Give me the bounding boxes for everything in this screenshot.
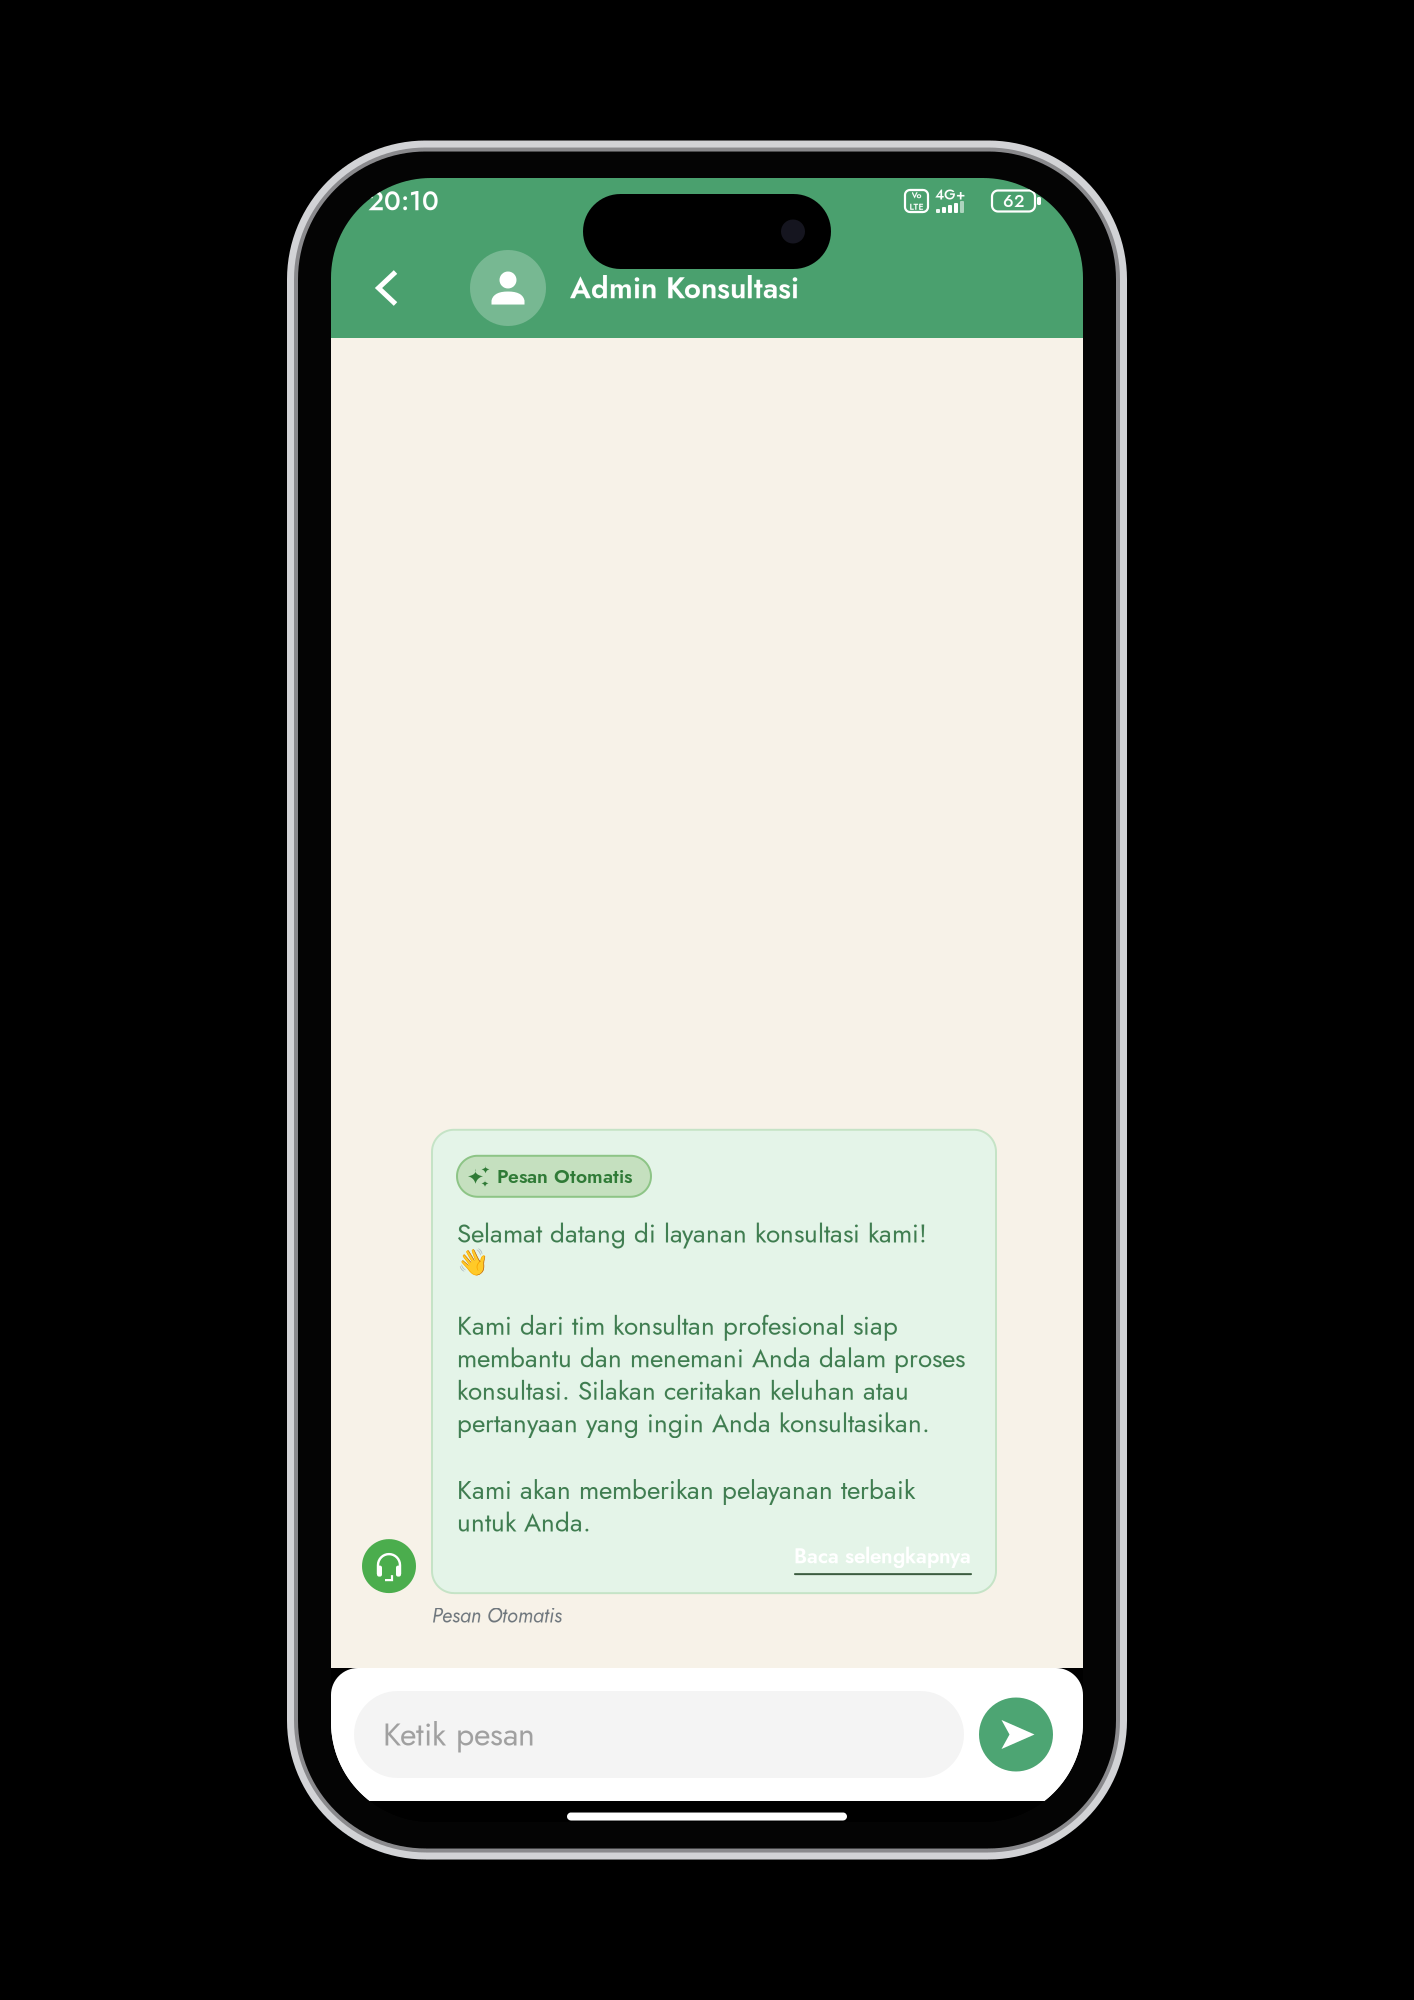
staticText: 20:10 xyxy=(368,182,439,220)
button[interactable]: Back xyxy=(354,250,420,326)
staticText: LTE xyxy=(909,200,923,213)
staticText: Kami akan memberikan pelayanan terbaik u… xyxy=(457,1471,915,1541)
staticText: Pesan Otomatis xyxy=(497,1162,632,1190)
staticText: 62 xyxy=(1003,188,1024,213)
button[interactable]: Baca selengkapnya xyxy=(794,1541,972,1575)
staticText: Ketik pesan xyxy=(383,1711,535,1758)
staticText: Pesan Otomatis xyxy=(432,1601,562,1630)
button[interactable]: Send xyxy=(979,1697,1053,1771)
staticText: Selamat datang di layanan konsultasi kam… xyxy=(457,1215,927,1278)
staticText: Baca selengkapnya xyxy=(794,1541,971,1571)
staticText: Admin Konsultasi xyxy=(570,267,799,309)
staticText: Kami dari tim konsultan profesional siap… xyxy=(457,1307,965,1442)
button[interactable]: Ketik pesan xyxy=(354,1691,964,1778)
staticText: 4G+ xyxy=(935,184,965,205)
staticText: Vo xyxy=(911,189,921,201)
